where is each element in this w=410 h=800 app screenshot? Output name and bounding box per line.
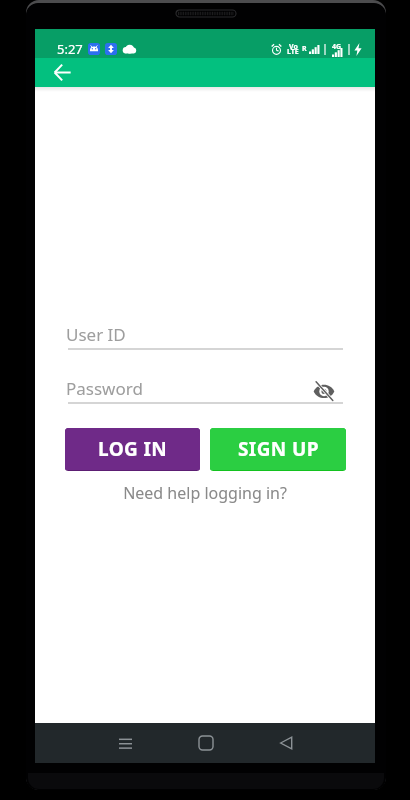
button[interactable]: SIGN UP <box>210 428 346 470</box>
button[interactable]: Back <box>47 58 77 87</box>
button[interactable]: Need help logging in? <box>123 482 287 504</box>
staticText: 4G <box>332 42 342 52</box>
button[interactable]: Recent apps <box>105 723 145 763</box>
button[interactable]: Home <box>186 723 226 763</box>
staticText: User ID <box>66 323 126 346</box>
button[interactable]: LOG IN <box>65 428 200 470</box>
staticText: SIGN UP <box>238 436 319 462</box>
staticText: R <box>302 44 307 54</box>
staticText: 5:27 <box>57 40 83 58</box>
staticText: Vo <box>289 42 298 52</box>
button[interactable]: Show password <box>311 378 337 404</box>
staticText: Password <box>66 377 143 400</box>
staticText: LOG IN <box>98 436 168 462</box>
staticText: LTE <box>287 47 299 57</box>
button[interactable]: Back <box>266 723 306 763</box>
